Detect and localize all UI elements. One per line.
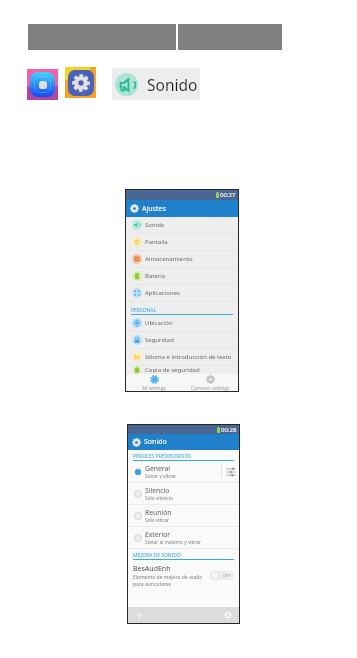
- staticText: All settings: [142, 385, 166, 391]
- button[interactable]: Equalizer: [222, 461, 239, 482]
- staticText: BesAudEnh: [133, 564, 171, 574]
- staticText: Sonido: [147, 74, 198, 95]
- staticText: Copia de seguridad: [145, 366, 200, 374]
- staticText: Sonido: [144, 437, 167, 447]
- button[interactable]: Seguridad: [126, 332, 238, 348]
- button[interactable]: Add: [135, 611, 143, 619]
- staticText: 00:27: [220, 191, 236, 199]
- staticText: Solo vibrar: [145, 517, 170, 524]
- button[interactable]: Exterior: [128, 527, 239, 548]
- staticText: Seguridad: [145, 336, 174, 344]
- staticText: Ajustes: [142, 204, 166, 214]
- button[interactable]: Idioma e introducción de texto: [126, 349, 238, 365]
- staticText: PERSONAL: [131, 307, 157, 314]
- button[interactable]: Sonido: [128, 434, 239, 450]
- button[interactable]: Almacenamiento: [126, 251, 238, 267]
- staticText: Sonar al máximo y vibrar: [145, 539, 202, 546]
- staticText: Reunión: [145, 508, 172, 517]
- staticText: Batería: [145, 272, 166, 280]
- staticText: Exterior: [145, 530, 171, 539]
- staticText: General: [145, 464, 171, 473]
- staticText: Ubicación: [145, 319, 173, 327]
- button[interactable]: Settings: [224, 611, 232, 619]
- button[interactable]: Sonido: [126, 217, 238, 233]
- button[interactable]: Batería: [126, 268, 238, 284]
- staticText: OFF: [223, 573, 231, 579]
- staticText: Almacenamiento: [145, 255, 193, 263]
- button[interactable]: Common settings: [182, 374, 238, 391]
- staticText: Pantalla: [145, 238, 168, 246]
- staticText: Solo silencio: [145, 495, 173, 502]
- button[interactable]: Sonido: [112, 68, 200, 100]
- staticText: MEJORA DE SONIDO: [133, 552, 181, 559]
- staticText: Sonar y vibrar: [145, 473, 177, 480]
- button[interactable]: Copia de seguridad: [126, 366, 238, 374]
- staticText: Idioma e introducción de texto: [145, 353, 232, 361]
- button[interactable]: Pantalla: [126, 234, 238, 250]
- staticText: PERFILES PREDEFINIDOS: [133, 453, 192, 460]
- button[interactable]: General: [128, 461, 239, 482]
- staticText: Elemento de mejora de audio para auricul…: [133, 574, 203, 587]
- button[interactable]: All settings: [126, 374, 182, 391]
- staticText: Silencio: [145, 486, 170, 495]
- button[interactable]: Ajustes: [126, 200, 238, 217]
- staticText: 00:28: [221, 426, 237, 434]
- staticText: Sonido: [145, 221, 165, 229]
- button[interactable]: BesAudEnh: [128, 560, 239, 590]
- button[interactable]: Ubicación: [126, 315, 238, 331]
- button[interactable]: BesAudEnh toggle, off: [210, 571, 234, 580]
- button[interactable]: Aplicaciones: [126, 285, 238, 301]
- staticText: Common settings: [191, 385, 230, 391]
- staticText: Aplicaciones: [145, 289, 180, 297]
- button[interactable]: Reunión: [128, 505, 239, 526]
- button[interactable]: Silencio: [128, 483, 239, 504]
